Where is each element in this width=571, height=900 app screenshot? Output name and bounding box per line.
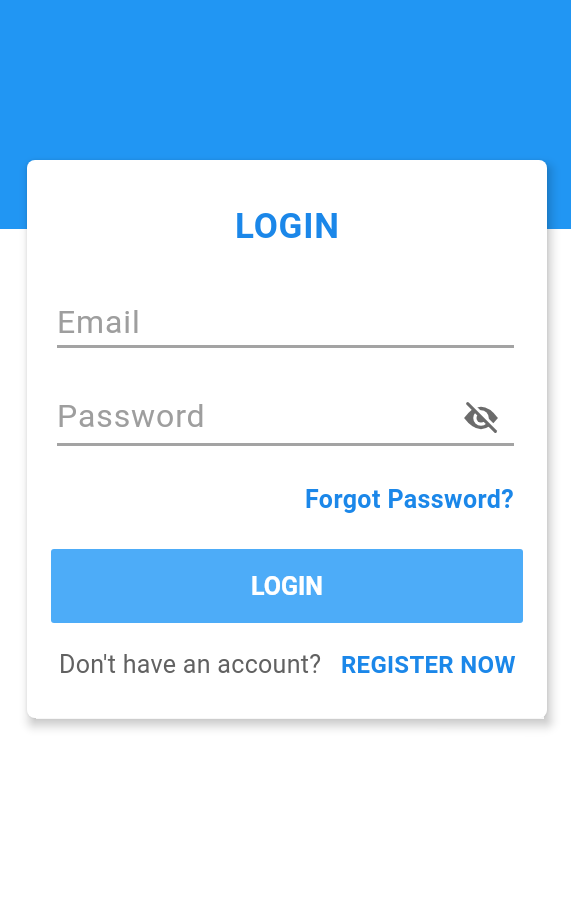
button[interactable]: LOGIN (51, 549, 523, 623)
button[interactable]: Password (57, 397, 514, 446)
staticText: LOGIN (251, 572, 324, 601)
button[interactable]: Forgot Password? (305, 485, 515, 514)
button[interactable] (463, 400, 499, 436)
button[interactable]: Email (57, 303, 514, 348)
staticText: Password (57, 397, 206, 435)
staticText: Don't have an account? (59, 650, 322, 679)
button[interactable]: REGISTER NOW (341, 651, 516, 679)
staticText: LOGIN (235, 206, 340, 247)
staticText: Email (57, 303, 141, 341)
